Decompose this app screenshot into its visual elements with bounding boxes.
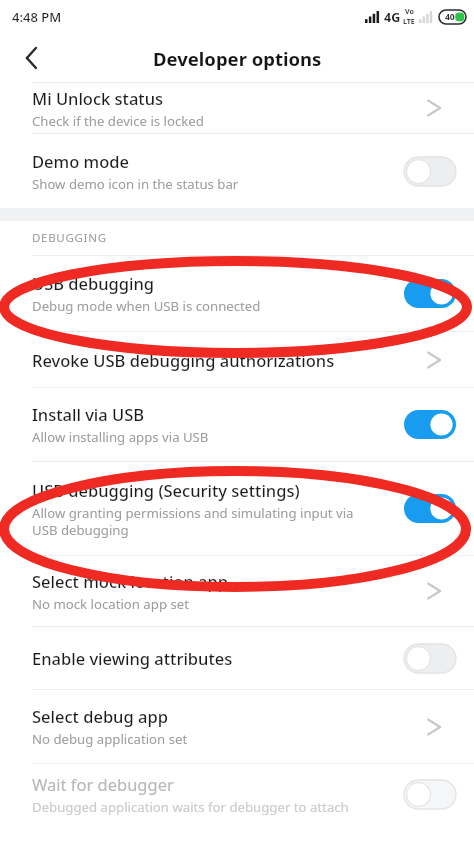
staticText: Revoke USB debugging authorizations — [32, 349, 335, 371]
button[interactable]: Demo mode — [0, 134, 474, 208]
button[interactable]: Switch off — [404, 644, 456, 673]
button[interactable]: Mi Unlock status — [416, 88, 456, 128]
staticText: 40 — [445, 11, 455, 23]
button[interactable]: USB debugging — [0, 256, 474, 331]
staticText: 4G — [384, 9, 401, 26]
staticText: Show demo icon in the status bar — [32, 175, 239, 193]
button[interactable]: Switch off — [404, 780, 456, 809]
staticText: Mi Unlock status — [32, 87, 164, 109]
staticText: Select debug app — [32, 705, 168, 727]
button[interactable]: Back — [16, 40, 52, 76]
staticText: Wait for debugger — [32, 773, 174, 795]
staticText: No debug application set — [32, 730, 188, 748]
staticText: Install via USB — [32, 403, 145, 425]
button[interactable]: Enable viewing attributes — [0, 627, 474, 689]
button[interactable]: USB debugging (Security settings) — [0, 462, 474, 555]
button[interactable]: Switch on — [404, 279, 456, 308]
button[interactable]: Revoke USB debugging authorizations — [0, 332, 474, 387]
button[interactable]: Switch on — [404, 410, 456, 439]
staticText: Debug mode when USB is connected — [32, 297, 261, 315]
button[interactable]: Wait for debugger — [0, 764, 474, 824]
staticText: USB debugging — [32, 272, 155, 294]
button[interactable]: Select mock location app — [0, 556, 474, 626]
button[interactable]: Switch on — [404, 494, 456, 523]
staticText: Allow installing apps via USB — [32, 428, 209, 446]
staticText: No mock location app set — [32, 595, 189, 613]
staticText: Vo — [405, 7, 414, 17]
button[interactable]: Switch off — [404, 157, 456, 186]
staticText: Enable viewing attributes — [32, 647, 233, 669]
staticText: Allow granting permissions and simulatin… — [32, 504, 354, 539]
button[interactable]: Select debug app — [0, 690, 474, 763]
staticText: Developer options — [153, 46, 322, 71]
staticText: 4:48 PM — [12, 8, 62, 26]
button[interactable]: Select debug app — [416, 707, 456, 747]
staticText: Select mock location app — [32, 570, 228, 592]
staticText: Demo mode — [32, 150, 129, 172]
button[interactable]: Select mock location app — [416, 571, 456, 611]
staticText: USB debugging (Security settings) — [32, 479, 300, 501]
button[interactable]: Mi Unlock status — [0, 83, 474, 133]
button[interactable]: Revoke USB debugging authorizations — [416, 340, 456, 380]
button[interactable]: Install via USB — [0, 388, 474, 461]
staticText: DEBUGGING — [32, 230, 107, 246]
staticText: Debugged application waits for debugger … — [32, 798, 349, 816]
staticText: LTE — [403, 17, 415, 27]
staticText: Check if the device is locked — [32, 112, 204, 130]
